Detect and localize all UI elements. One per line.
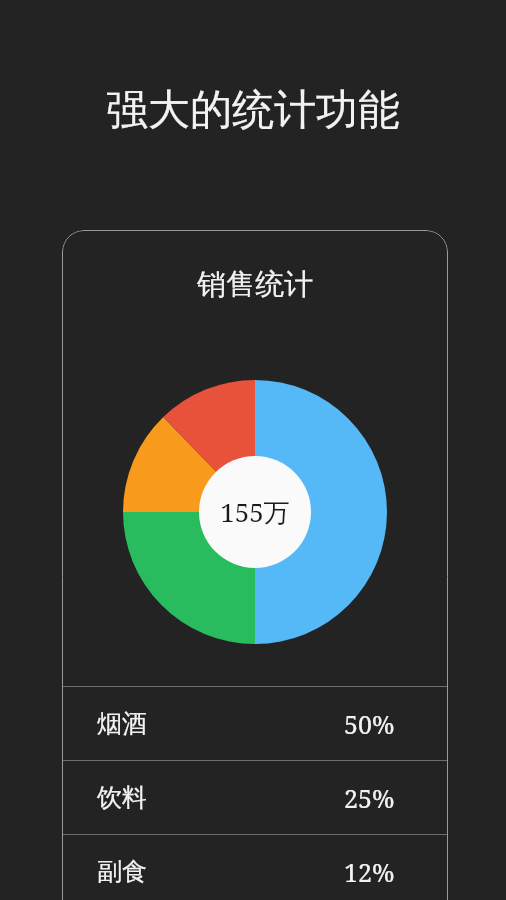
staticText: 副食 <box>97 856 147 887</box>
staticText: 烟酒 <box>97 708 147 739</box>
staticText: 155万 <box>220 494 290 530</box>
staticText: 50% <box>344 707 395 741</box>
button[interactable]: 副食 <box>62 835 448 900</box>
button[interactable]: 烟酒 <box>62 687 448 760</box>
staticText: 销售统计 <box>197 266 313 303</box>
staticText: 饮料 <box>97 782 147 813</box>
staticText: 12% <box>344 855 395 889</box>
staticText: 强大的统计功能 <box>0 84 506 137</box>
staticText: 25% <box>344 781 395 815</box>
button[interactable]: 饮料 <box>62 761 448 834</box>
